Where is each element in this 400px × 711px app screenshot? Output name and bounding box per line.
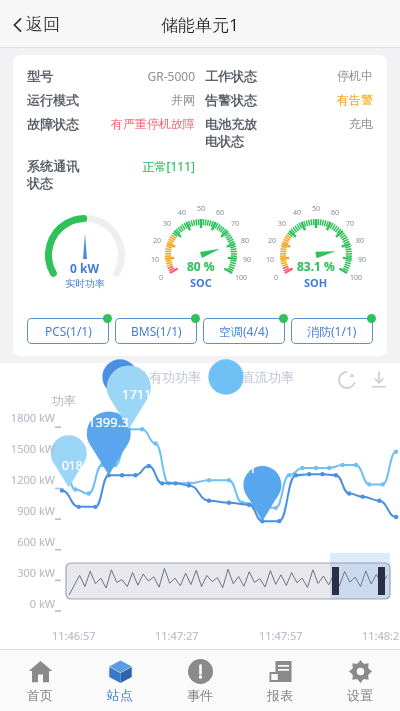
staticText: 0 [274,273,279,283]
staticText: 40 [293,208,302,218]
staticText: 有严重停机故障 [93,116,195,131]
staticText: 1500 kW [0,441,55,456]
staticText: 83.1 % [297,258,335,274]
staticText: 100 [235,273,248,283]
staticText: 型号 [27,68,89,84]
staticText: 报表 [267,687,293,703]
staticText: 0 [159,273,164,283]
staticText: 30 [278,219,287,229]
staticText: 电池充放电状态 [205,116,267,150]
button[interactable]: 返回 [6,8,66,41]
staticText: 11:48:2 [362,628,400,643]
button[interactable]: 设置 [320,650,400,711]
staticText: 11:46:57 [52,628,96,643]
staticText: 80 % [187,258,215,274]
button[interactable]: 事件 [160,650,240,711]
staticText: 100 [350,273,363,283]
button[interactable]: Download [368,369,390,391]
staticText: SOH [304,275,328,290]
staticText: 储能单元1 [161,13,239,36]
staticText: 1711.8 [122,385,163,403]
staticText: 空调(4/4) [219,323,269,339]
staticText: 11:47:57 [259,628,303,643]
staticText: 30 [163,219,172,229]
staticText: GR-5000 [93,68,195,84]
button[interactable]: 首页 [0,650,80,711]
staticText: 10 [266,255,275,265]
button[interactable]: 空调(4/4) [203,318,285,344]
button[interactable]: 站点 [80,650,160,711]
staticText: 系统通讯状态 [27,158,89,192]
staticText: 20 [153,236,162,246]
staticText: 90 [243,255,252,265]
staticText: 总有功功率 [136,369,201,385]
staticText: 60 [216,208,225,218]
staticText: 80 [241,236,250,246]
staticText: SOC [190,275,212,290]
staticText: 11:47:27 [155,628,199,643]
staticText: 故障状态 [27,116,89,132]
button[interactable]: PCS(1/1) [27,318,109,344]
staticText: 事件 [187,687,213,703]
button[interactable]: Refresh [336,369,358,391]
staticText: 600 kW [0,534,55,549]
staticText: 实时功率 [65,277,105,290]
staticText: PCS(1/1) [45,323,92,339]
staticText: 50 [197,204,206,214]
staticText: 60 [331,208,340,218]
staticText: 设置 [347,687,373,703]
staticText: 0 kW [70,260,100,276]
staticText: 直流功率 [242,369,294,385]
staticText: 1200 kW [0,472,55,487]
staticText: 1399.3 [88,413,129,431]
staticText: 告警状态 [205,92,267,108]
staticText: 返回 [26,14,60,35]
staticText: 运行模式 [27,92,89,108]
button[interactable]: 报表 [240,650,320,711]
staticText: 018.7 [62,457,93,473]
button[interactable]: 消防(1/1) [291,318,373,344]
staticText: 80 [356,236,365,246]
staticText: 站点 [107,687,133,703]
staticText: 900 kW [0,503,55,518]
staticText: BMS(1/1) [131,323,182,339]
staticText: 消防(1/1) [307,323,357,339]
staticText: 70 [231,219,240,229]
staticText: 停机中 [271,68,373,83]
staticText: 首页 [27,687,53,703]
staticText: 40 [178,208,187,218]
staticText: 0 kW [0,596,55,611]
staticText: 50 [312,204,321,214]
staticText: 10 [151,255,160,265]
staticText: 300 kW [0,565,55,580]
staticText: 工作状态 [205,68,267,84]
staticText: 1800 kW [0,410,55,425]
staticText: 有告警 [271,92,373,107]
staticText: 821 [234,459,257,477]
staticText: 20 [268,236,277,246]
staticText: 正常[111] [93,158,195,174]
staticText: 并网 [93,92,195,107]
button[interactable]: BMS(1/1) [115,318,197,344]
staticText: 功率 [52,393,76,408]
staticText: 90 [358,255,367,265]
staticText: 充电 [271,116,373,131]
staticText: 70 [346,219,355,229]
